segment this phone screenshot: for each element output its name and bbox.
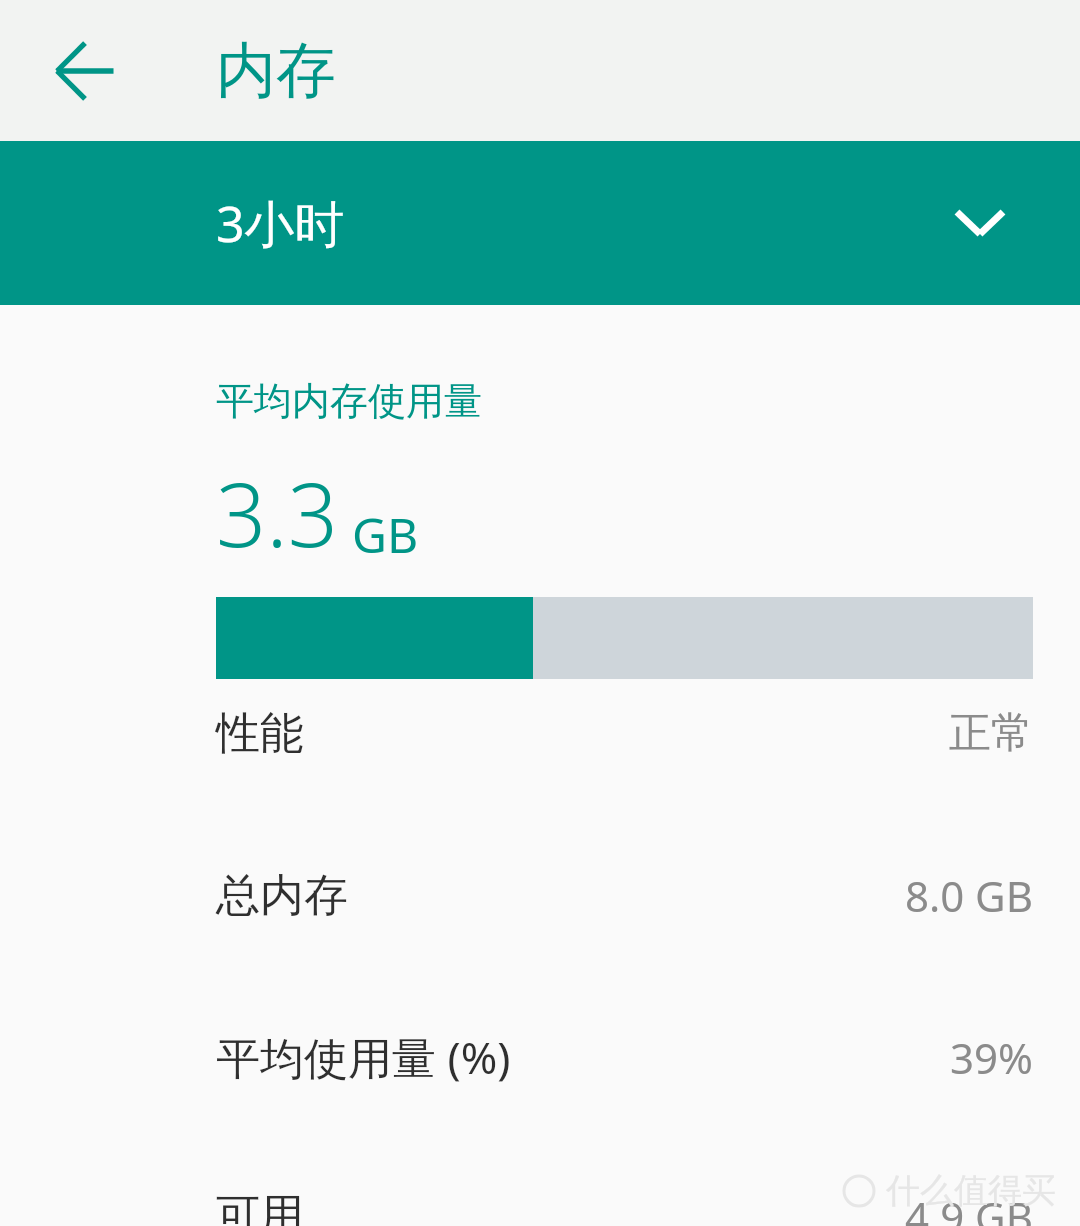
button[interactable]: 性能 — [0, 702, 1080, 764]
staticText: GB — [352, 502, 419, 567]
button[interactable]: 可用 — [0, 1188, 1080, 1226]
staticText: 总内存 — [216, 868, 348, 923]
button[interactable]: 3小时 — [0, 141, 1080, 305]
staticText: 可用 — [216, 1188, 304, 1226]
staticText: 什么值得买 — [886, 1169, 1056, 1212]
staticText: 平均使用量 (%) — [216, 1027, 511, 1087]
button[interactable]: 总内存 — [0, 864, 1080, 926]
staticText: 平均内存使用量 — [216, 377, 482, 425]
staticText: 3小时 — [216, 189, 345, 257]
button[interactable]: 平均使用量 (%) — [0, 1026, 1080, 1088]
staticText: 正常 — [949, 707, 1033, 760]
staticText: 39% — [950, 1029, 1033, 1086]
staticText: 3.3 — [216, 453, 338, 573]
staticText: 性能 — [216, 706, 304, 761]
staticText: 4.9 GB — [904, 1188, 1033, 1226]
staticText: 内存 — [216, 33, 336, 109]
staticText: 8.0 GB — [904, 867, 1033, 924]
button[interactable]: Back — [25, 11, 145, 131]
